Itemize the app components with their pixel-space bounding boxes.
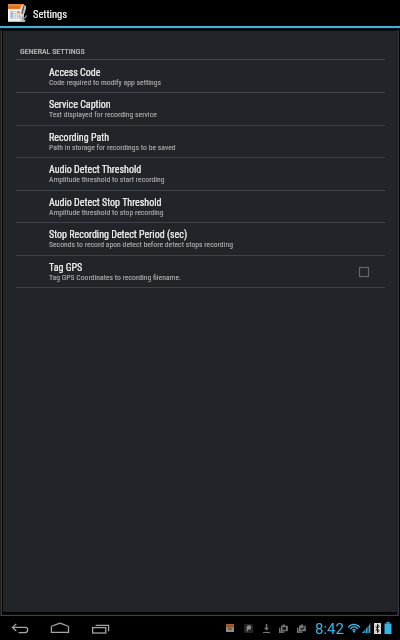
- staticText: 8:42: [315, 620, 344, 638]
- staticText: Code required to modify app settings: [49, 78, 161, 87]
- staticText: Stop Recording Detect Period (sec): [49, 229, 188, 241]
- button[interactable]: Tag GPS checkbox: [359, 267, 369, 277]
- button[interactable]: Service Caption: [3, 92, 397, 125]
- staticText: Settings: [33, 8, 68, 20]
- staticText: Tag GPS: [49, 262, 83, 274]
- staticText: Amplitude threshold to stop recording: [49, 208, 164, 217]
- staticText: Service Caption: [49, 99, 111, 111]
- button[interactable]: Recording Path: [3, 125, 397, 158]
- button[interactable]: Stop Recording Detect Period (sec): [3, 222, 397, 255]
- button[interactable]: Audio Detect Stop Threshold: [3, 190, 397, 223]
- staticText: Tag GPS Coordinates to recording filenam…: [49, 273, 182, 282]
- button[interactable]: Audio Detect Threshold: [3, 157, 397, 190]
- staticText: Path in storage for recordings to be sav…: [49, 143, 176, 152]
- staticText: GENERAL SETTINGS: [20, 47, 85, 56]
- button[interactable]: Recent apps: [90, 616, 112, 640]
- button[interactable]: Back: [9, 616, 31, 640]
- button[interactable]: Access Code: [3, 60, 397, 93]
- staticText: Audio Detect Threshold: [49, 164, 142, 176]
- staticText: Recording Path: [49, 132, 109, 144]
- staticText: Seconds to record apon detect before det…: [49, 240, 233, 249]
- staticText: Amplitude threshold to start recording: [49, 175, 165, 184]
- staticText: Audio Detect Stop Threshold: [49, 197, 162, 209]
- staticText: Text displayed for recording service: [49, 110, 157, 119]
- button[interactable]: Tag GPS: [3, 255, 397, 288]
- button[interactable]: Home: [49, 616, 71, 640]
- staticText: Access Code: [49, 67, 101, 79]
